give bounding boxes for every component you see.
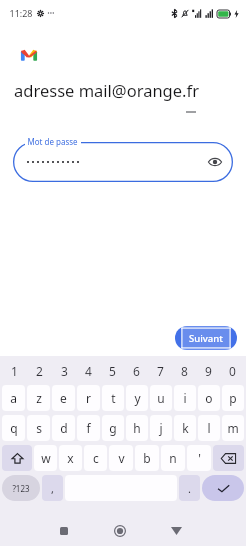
staticText: a <box>10 390 17 406</box>
staticText: n <box>169 450 177 466</box>
button[interactable]: Supprimer <box>213 445 244 471</box>
button[interactable]: 4 <box>76 359 100 383</box>
button[interactable]: q <box>2 415 25 441</box>
button[interactable]: e <box>52 385 75 411</box>
staticText: c <box>93 450 99 466</box>
staticText: adresse mail@orange.fr <box>14 79 199 101</box>
button[interactable]: n <box>161 445 185 471</box>
staticText: 11:28 <box>9 7 33 19</box>
staticText: 2 <box>36 363 43 379</box>
button[interactable]: r <box>77 385 100 411</box>
staticText: s <box>36 420 42 436</box>
button[interactable]: Suivant <box>175 326 237 350</box>
button[interactable]: Accueil <box>92 516 148 546</box>
staticText: f <box>86 420 91 436</box>
staticText: p <box>229 390 237 406</box>
button[interactable]: s <box>27 415 50 441</box>
staticText: 1 <box>11 363 18 379</box>
staticText: m <box>227 420 239 436</box>
button[interactable]: p <box>222 385 244 411</box>
button[interactable]: o <box>198 385 220 411</box>
button[interactable]: 3 <box>52 359 76 383</box>
button[interactable]: u <box>150 385 172 411</box>
staticText: e <box>60 390 67 406</box>
staticText: 8 <box>181 363 188 379</box>
staticText: g <box>109 420 117 436</box>
staticText: r <box>86 390 91 406</box>
staticText: , <box>51 481 54 496</box>
button[interactable]: , <box>42 475 63 501</box>
button[interactable]: x <box>59 445 82 471</box>
staticText: z <box>36 390 42 406</box>
button[interactable]: 8 <box>172 359 196 383</box>
button[interactable]: 5 <box>100 359 124 383</box>
button[interactable]: a <box>2 385 25 411</box>
staticText: 0 <box>229 363 236 379</box>
button[interactable]: b <box>135 445 159 471</box>
button[interactable]: d <box>52 415 75 441</box>
staticText: i <box>183 390 187 406</box>
button[interactable]: . <box>179 475 200 501</box>
button[interactable]: ?123 <box>2 475 40 501</box>
staticText: t <box>111 390 116 406</box>
button[interactable]: Applications récentes <box>36 516 92 546</box>
button[interactable]: Masquer le clavier <box>148 516 204 546</box>
staticText: ?123 <box>12 483 30 494</box>
staticText: 6 <box>133 363 140 379</box>
button[interactable]: v <box>109 445 133 471</box>
button[interactable]: 7 <box>148 359 172 383</box>
button[interactable]: l <box>198 415 220 441</box>
staticText: Mot de passe <box>27 136 78 147</box>
button[interactable]: 6 <box>124 359 148 383</box>
button[interactable]: f <box>77 415 100 441</box>
staticText: u <box>157 390 165 406</box>
button[interactable]: c <box>84 445 107 471</box>
staticText: v <box>118 450 125 466</box>
button[interactable]: h <box>126 415 148 441</box>
button[interactable]: Mot de passe <box>13 142 233 182</box>
button[interactable]: 9 <box>196 359 220 383</box>
button[interactable]: t <box>102 385 124 411</box>
button[interactable]: y <box>126 385 148 411</box>
button[interactable]: j <box>150 415 172 441</box>
staticText: w <box>41 450 51 466</box>
button[interactable]: z <box>27 385 50 411</box>
staticText: . <box>188 481 191 496</box>
button[interactable]: w <box>34 445 57 471</box>
staticText: 5 <box>109 363 116 379</box>
button[interactable]: ' <box>187 445 211 471</box>
staticText: k <box>182 420 189 436</box>
staticText: 7 <box>157 363 164 379</box>
staticText: ' <box>198 450 201 466</box>
button[interactable]: 2 <box>27 359 52 383</box>
staticText: o <box>205 390 213 406</box>
staticText: y <box>134 390 141 406</box>
staticText: 9 <box>205 363 212 379</box>
button[interactable]: 1 <box>2 359 27 383</box>
button[interactable]: 0 <box>220 359 244 383</box>
staticText: d <box>60 420 68 436</box>
staticText: q <box>10 420 18 436</box>
button[interactable]: Valider <box>202 475 244 501</box>
staticText: l <box>207 420 211 436</box>
staticText: x <box>67 450 74 466</box>
button[interactable]: Maj <box>2 445 32 471</box>
staticText: b <box>143 450 151 466</box>
staticText: 3 <box>61 363 68 379</box>
button[interactable]: k <box>174 415 196 441</box>
staticText: h <box>133 420 141 436</box>
staticText: 4 <box>85 363 92 379</box>
staticText: j <box>159 420 163 436</box>
staticText: Suivant <box>189 332 223 345</box>
button[interactable]: m <box>222 415 244 441</box>
button[interactable]: Afficher le mot de passe <box>206 153 224 171</box>
button[interactable]: i <box>174 385 196 411</box>
button[interactable]: g <box>102 415 124 441</box>
